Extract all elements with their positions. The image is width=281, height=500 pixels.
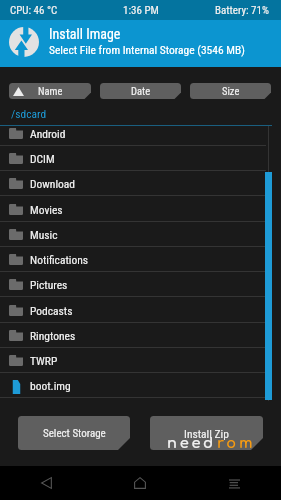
staticText: CPU: 46 °C (10, 4, 58, 17)
button[interactable]: Home (93, 466, 187, 500)
staticText: Select Storage (43, 427, 106, 440)
staticText: Ringtones (30, 329, 76, 342)
staticText: Select File from Internal Storage (3546 … (49, 43, 245, 56)
staticText: Date (131, 85, 151, 97)
staticText: 1:36 PM (123, 4, 159, 17)
button[interactable]: Date (100, 83, 181, 99)
staticText: Download (30, 177, 76, 190)
staticText: Podcasts (30, 304, 73, 317)
staticText: Install Image (49, 26, 121, 42)
button[interactable]: Install Zip (150, 416, 263, 450)
staticText: Size (222, 85, 240, 97)
staticText: Pictures (30, 278, 68, 291)
staticText: Movies (30, 203, 63, 216)
button[interactable]: Android (0, 125, 281, 146)
staticText: Music (30, 228, 58, 241)
button[interactable]: Back (0, 466, 93, 500)
button[interactable]: Movies (0, 197, 281, 222)
button[interactable]: Size (190, 83, 271, 99)
button[interactable]: Pictures (0, 272, 281, 297)
staticText: /sdcard (11, 107, 47, 120)
staticText: need (167, 435, 217, 450)
staticText: Android (30, 127, 66, 140)
button[interactable]: DCIM (0, 146, 281, 171)
button[interactable]: Music (0, 222, 281, 247)
button[interactable]: Ringtones (0, 323, 281, 348)
staticText: TWRP (30, 354, 58, 367)
staticText: rom (217, 435, 256, 450)
staticText: Name (38, 85, 63, 97)
button[interactable]: Notifications (0, 247, 281, 272)
staticText: Notifications (30, 253, 89, 266)
staticText: DCIM (30, 152, 55, 165)
staticText: Install Zip (184, 427, 229, 440)
button[interactable]: Recent apps (187, 466, 281, 500)
button[interactable]: Select Storage (18, 416, 130, 450)
staticText: Battery: 71% (215, 4, 269, 17)
button[interactable]: boot.img (0, 373, 281, 398)
button[interactable]: Podcasts (0, 298, 281, 323)
button[interactable]: TWRP (0, 348, 281, 373)
button[interactable]: Name (9, 83, 91, 99)
staticText: boot.img (30, 379, 71, 392)
button[interactable]: Download (0, 171, 281, 196)
